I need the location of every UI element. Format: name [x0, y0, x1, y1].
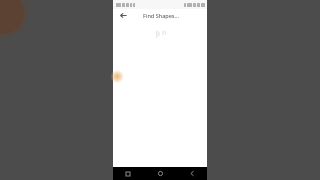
- button[interactable]: Back: [118, 10, 129, 21]
- button[interactable]: Recent apps: [122, 168, 133, 179]
- button[interactable]: Find Shapes...: [143, 12, 180, 19]
- staticText: Find Shapes...: [143, 12, 180, 19]
- button[interactable]: Home: [155, 168, 166, 179]
- button[interactable]: Back: [187, 168, 198, 179]
